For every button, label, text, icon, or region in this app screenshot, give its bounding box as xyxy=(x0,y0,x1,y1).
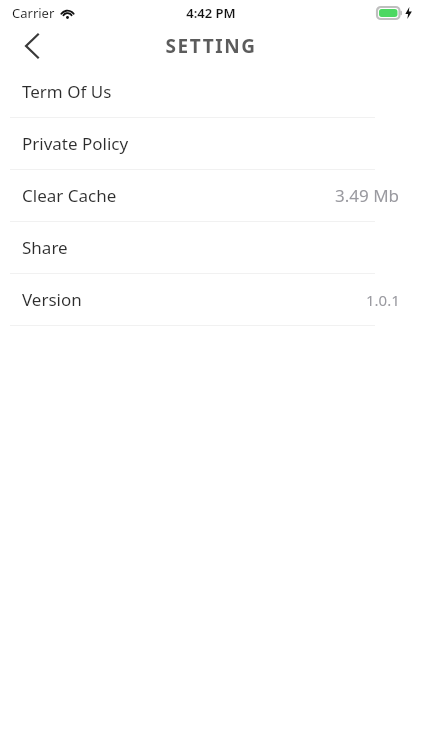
staticText: Carrier xyxy=(12,4,55,22)
staticText: Private Policy xyxy=(22,132,129,155)
button[interactable]: Private Policy xyxy=(0,118,422,169)
staticText: Term Of Us xyxy=(22,80,112,103)
staticText: Clear Cache xyxy=(22,184,117,207)
staticText: Version xyxy=(22,288,82,311)
button[interactable]: Term Of Us xyxy=(0,66,422,117)
button[interactable]: Share xyxy=(0,222,422,273)
staticText: 4:42 PM xyxy=(186,4,236,22)
staticText: Share xyxy=(22,236,68,259)
button[interactable]: Clear Cache xyxy=(0,170,422,221)
button[interactable]: Back xyxy=(10,26,54,66)
button[interactable]: Version xyxy=(0,274,422,325)
staticText: SETTING xyxy=(165,33,257,59)
staticText: 1.0.1 xyxy=(366,290,400,310)
staticText: 3.49 Mb xyxy=(335,184,400,207)
